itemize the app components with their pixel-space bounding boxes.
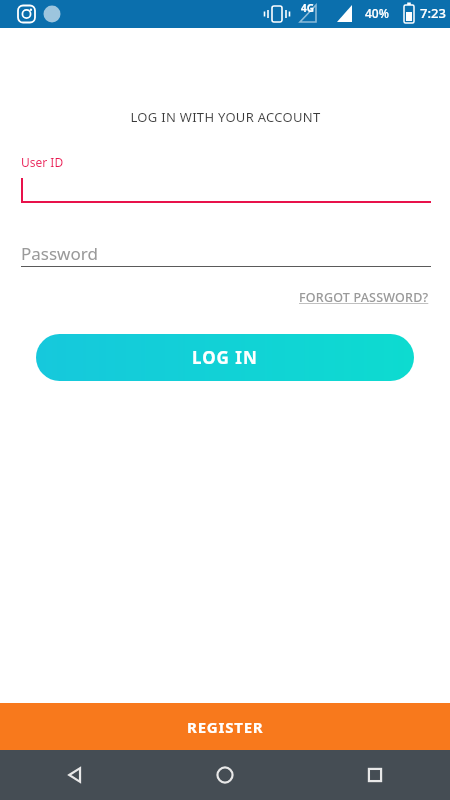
- staticText: User ID: [21, 154, 64, 170]
- staticText: 4G: [301, 1, 314, 15]
- button[interactable]: LOG IN: [36, 334, 414, 381]
- staticText: 7:23: [420, 4, 446, 22]
- button[interactable]: Home: [150, 750, 300, 800]
- button[interactable]: FORGOT PASSWORD?: [297, 287, 431, 308]
- staticText: REGISTER: [187, 717, 264, 737]
- button[interactable]: Password: [21, 240, 431, 267]
- button[interactable]: Back: [0, 750, 150, 800]
- button[interactable]: REGISTER: [0, 703, 450, 750]
- button[interactable]: Recent apps: [300, 750, 450, 800]
- staticText: LOG IN: [192, 346, 258, 369]
- button[interactable]: User ID: [21, 154, 431, 203]
- staticText: LOG IN WITH YOUR ACCOUNT: [130, 108, 321, 126]
- staticText: FORGOT PASSWORD?: [299, 289, 429, 306]
- staticText: 40%: [365, 5, 389, 21]
- staticText: Password: [21, 242, 98, 265]
